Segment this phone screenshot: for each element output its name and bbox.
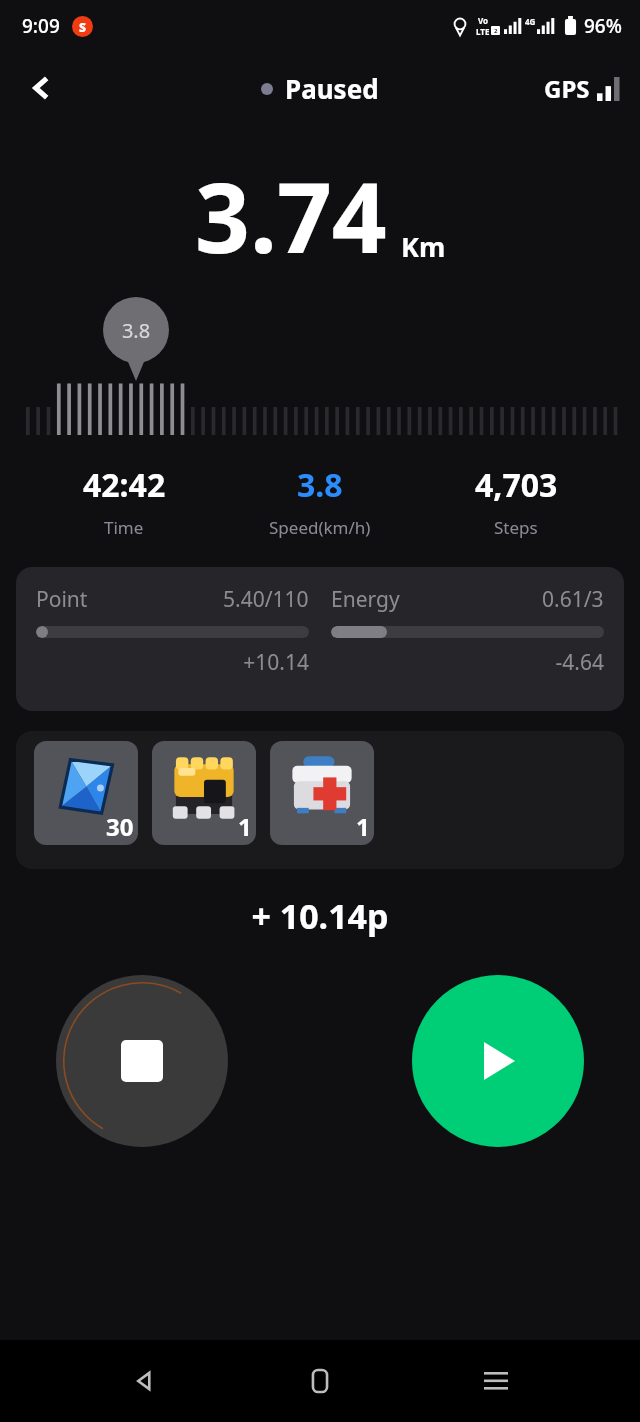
- staticText: Point: [36, 585, 88, 614]
- button[interactable]: Point: [16, 567, 624, 711]
- staticText: 4,703: [475, 463, 558, 507]
- staticText: +10.14: [36, 648, 309, 677]
- staticText: 3.8: [297, 463, 343, 507]
- button[interactable]: GPS: [544, 72, 620, 105]
- staticText: 3.74: [195, 150, 387, 281]
- button[interactable]: Recent apps: [464, 1349, 528, 1413]
- staticText: Speed(km/h): [269, 516, 371, 539]
- button[interactable]: Stop: [56, 975, 228, 1147]
- staticText: S: [79, 19, 86, 35]
- button[interactable]: 1: [270, 741, 374, 845]
- staticText: 4G: [525, 16, 536, 27]
- button[interactable]: Resume: [412, 975, 584, 1147]
- staticText: Steps: [494, 516, 538, 539]
- staticText: 42:42: [83, 463, 166, 507]
- staticText: LTE: [476, 26, 490, 37]
- staticText: 30: [106, 810, 134, 843]
- staticText: Energy: [331, 585, 400, 614]
- staticText: Vo: [478, 15, 489, 26]
- staticText: GPS: [544, 72, 590, 105]
- button[interactable]: Home: [288, 1349, 352, 1413]
- button[interactable]: Back: [14, 60, 70, 116]
- staticText: 3.8: [103, 317, 169, 344]
- staticText: 2: [494, 27, 498, 35]
- staticText: 9:09: [22, 13, 60, 39]
- staticText: Time: [104, 516, 144, 539]
- staticText: 1: [238, 810, 252, 843]
- staticText: 96%: [584, 13, 622, 39]
- staticText: Km: [401, 228, 446, 265]
- staticText: 5.40/110: [223, 585, 309, 614]
- staticText: + 10.14p: [0, 893, 640, 939]
- staticText: -4.64: [331, 648, 604, 677]
- staticText: Paused: [285, 71, 379, 106]
- staticText: 0.61/3: [542, 585, 604, 614]
- staticText: 1: [356, 810, 370, 843]
- button[interactable]: 1: [152, 741, 256, 845]
- button[interactable]: Back: [112, 1349, 176, 1413]
- button[interactable]: 30: [34, 741, 138, 845]
